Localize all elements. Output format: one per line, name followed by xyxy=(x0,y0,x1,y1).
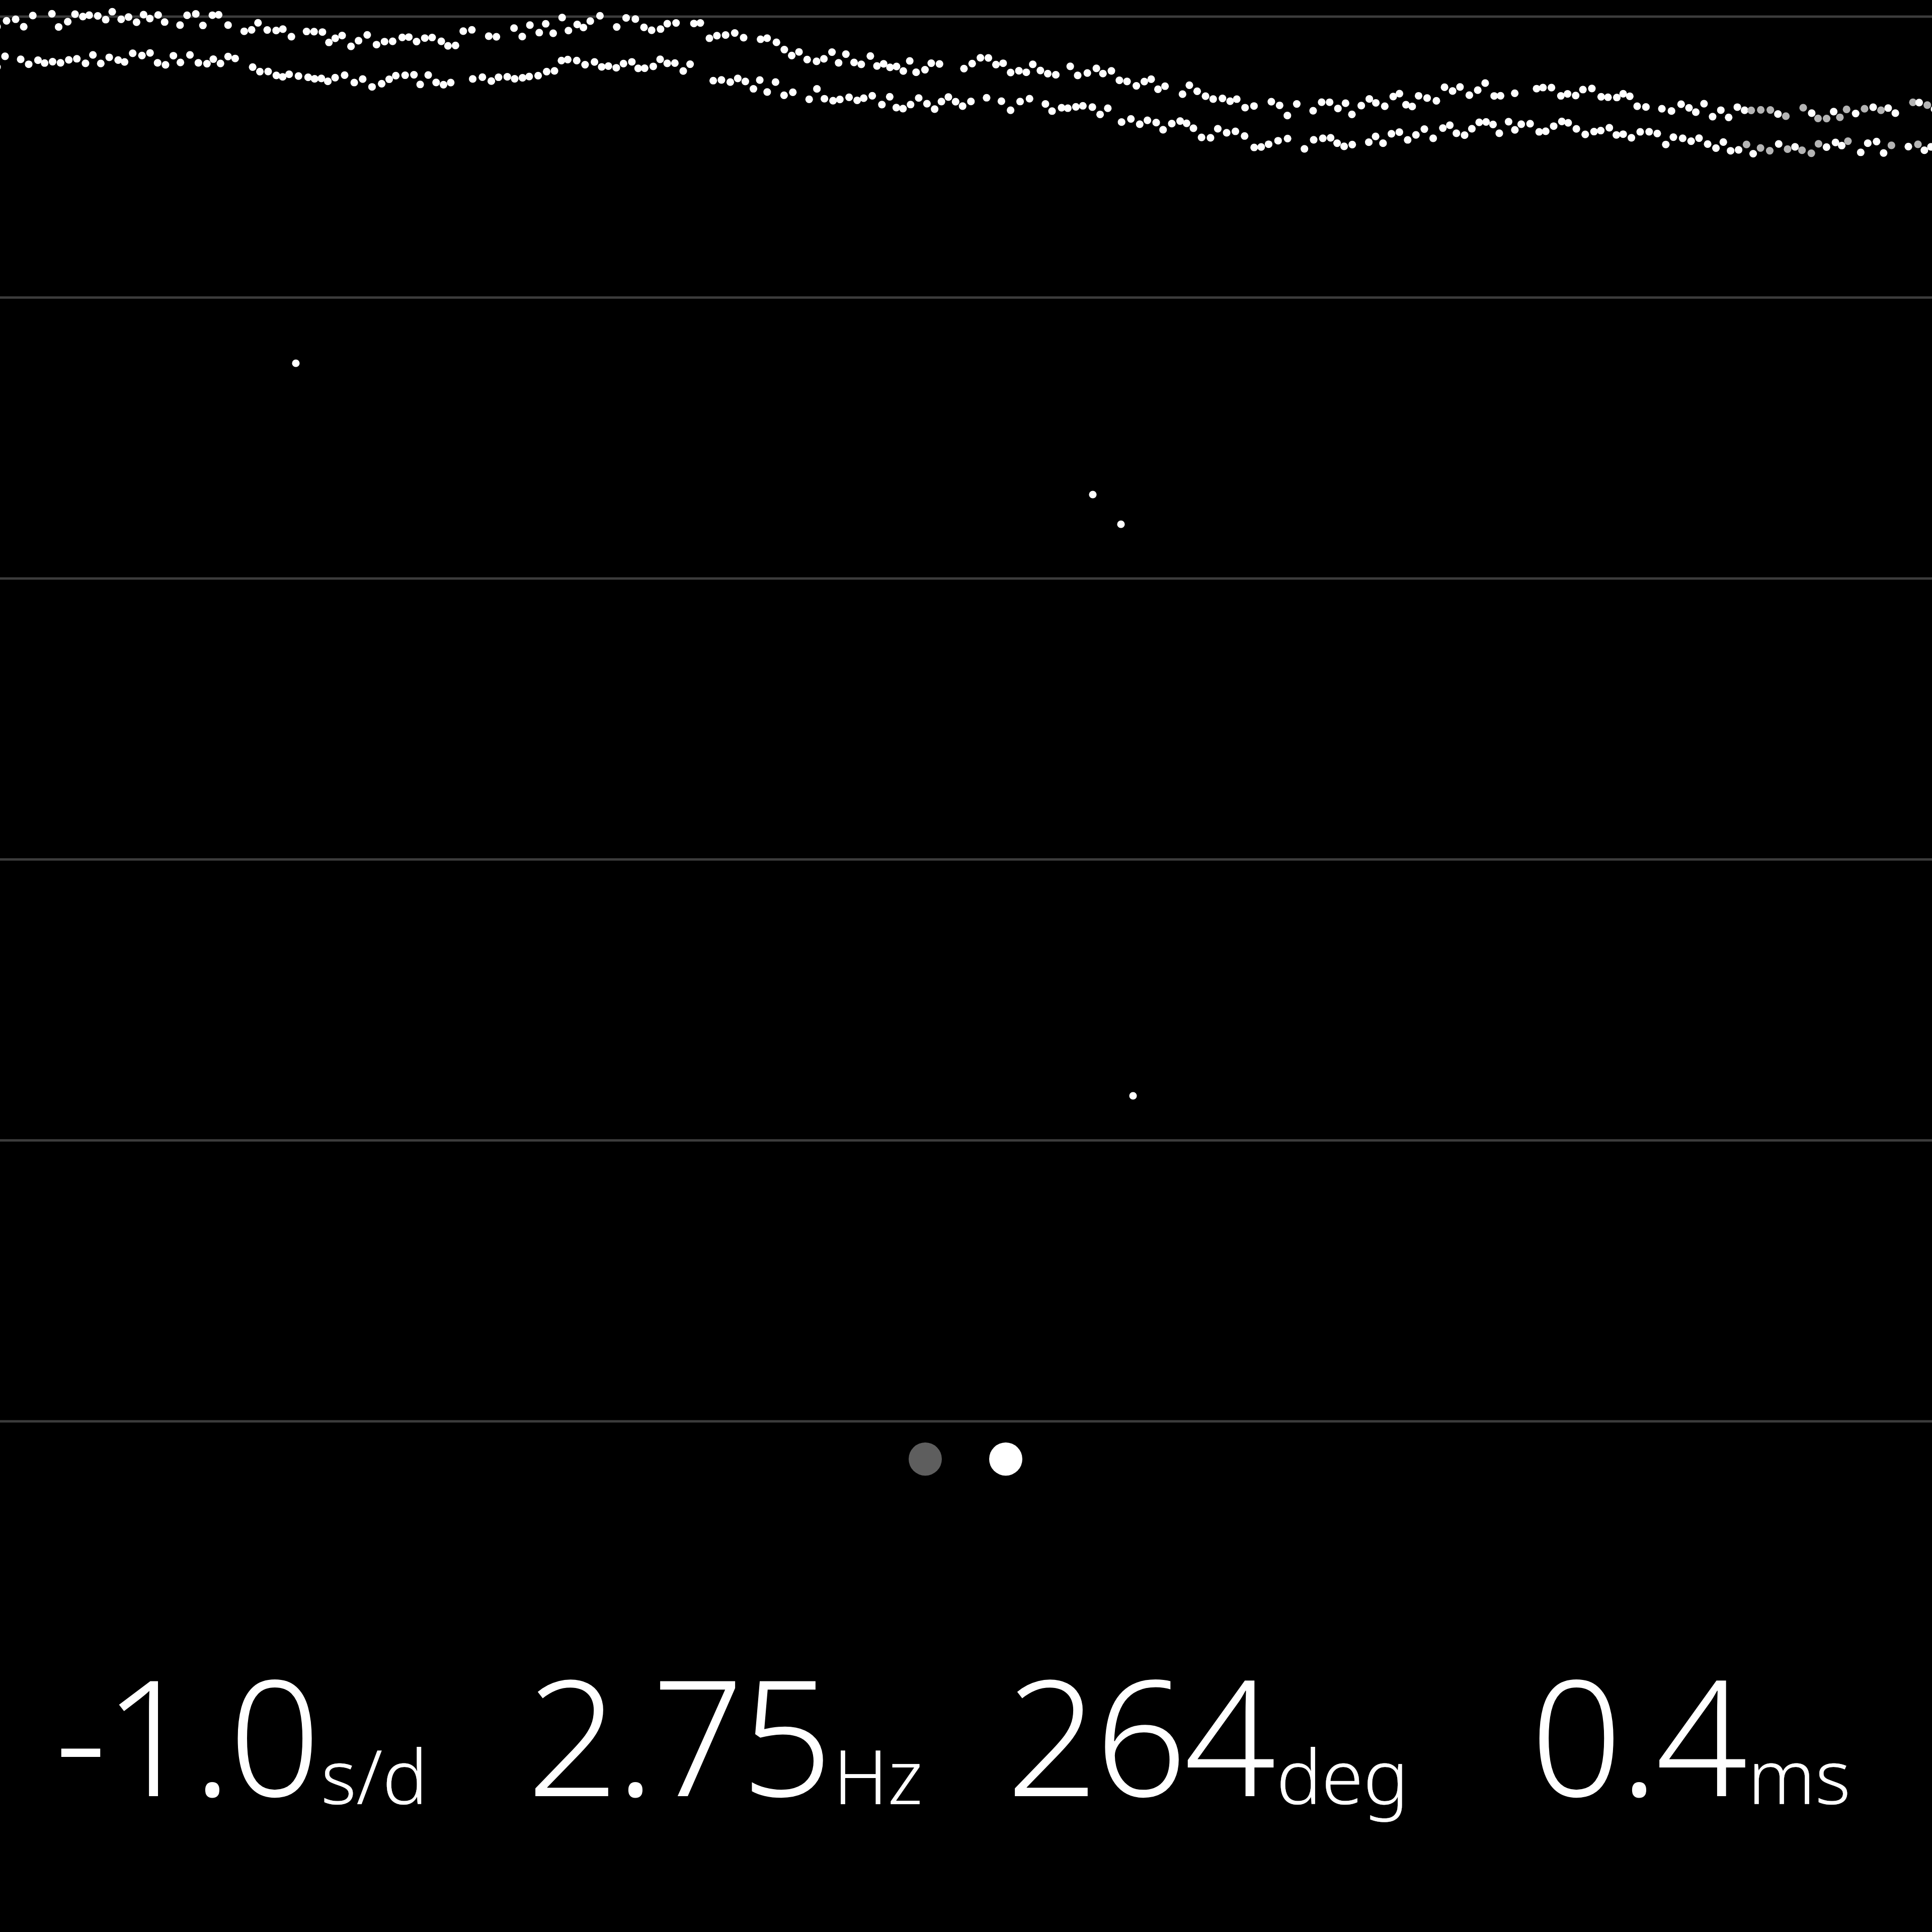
staticText: 0.4 xyxy=(1531,1624,1745,1843)
button[interactable]: 0.4 xyxy=(1449,1624,1932,1866)
staticText: ms xyxy=(1748,1724,1851,1826)
button[interactable]: 2.75 xyxy=(483,1624,966,1866)
button[interactable] xyxy=(0,0,1932,1431)
button[interactable]: -1.0 xyxy=(0,1624,483,1866)
staticText: Hz xyxy=(833,1724,923,1826)
staticText: 2.75 xyxy=(527,1624,830,1843)
staticText: s/d xyxy=(321,1724,428,1826)
staticText: -1.0 xyxy=(55,1624,318,1843)
button[interactable]: 264 xyxy=(966,1624,1449,1866)
button[interactable]: Page indicator xyxy=(897,1435,1034,1483)
staticText: 264 xyxy=(1006,1624,1273,1843)
staticText: deg xyxy=(1276,1724,1409,1826)
